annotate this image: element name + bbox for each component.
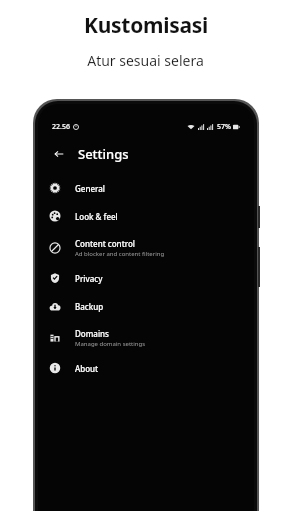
- staticText: Domains: [75, 328, 109, 339]
- button[interactable]: Privacy: [38, 268, 254, 288]
- button[interactable]: Domains: [38, 324, 254, 352]
- button[interactable]: Content control: [38, 234, 254, 262]
- staticText: Look & feel: [75, 211, 118, 222]
- button[interactable]: Backup: [38, 296, 254, 316]
- staticText: 57%: [217, 122, 231, 132]
- staticText: Kustomisasi: [84, 11, 208, 40]
- staticText: Manage domain settings: [75, 340, 146, 348]
- staticText: Atur sesuai selera: [87, 51, 204, 70]
- button[interactable]: Back: [49, 144, 69, 164]
- staticText: Privacy: [75, 273, 103, 284]
- button[interactable]: About: [38, 358, 254, 378]
- staticText: 22.56: [52, 122, 70, 132]
- staticText: General: [75, 183, 105, 194]
- staticText: Settings: [78, 145, 129, 163]
- staticText: Content control: [75, 238, 135, 249]
- staticText: Ad blocker and content filtering: [75, 250, 165, 258]
- button[interactable]: General: [38, 178, 254, 198]
- button[interactable]: Look & feel: [38, 206, 254, 226]
- staticText: Backup: [75, 301, 104, 312]
- staticText: About: [75, 363, 99, 374]
